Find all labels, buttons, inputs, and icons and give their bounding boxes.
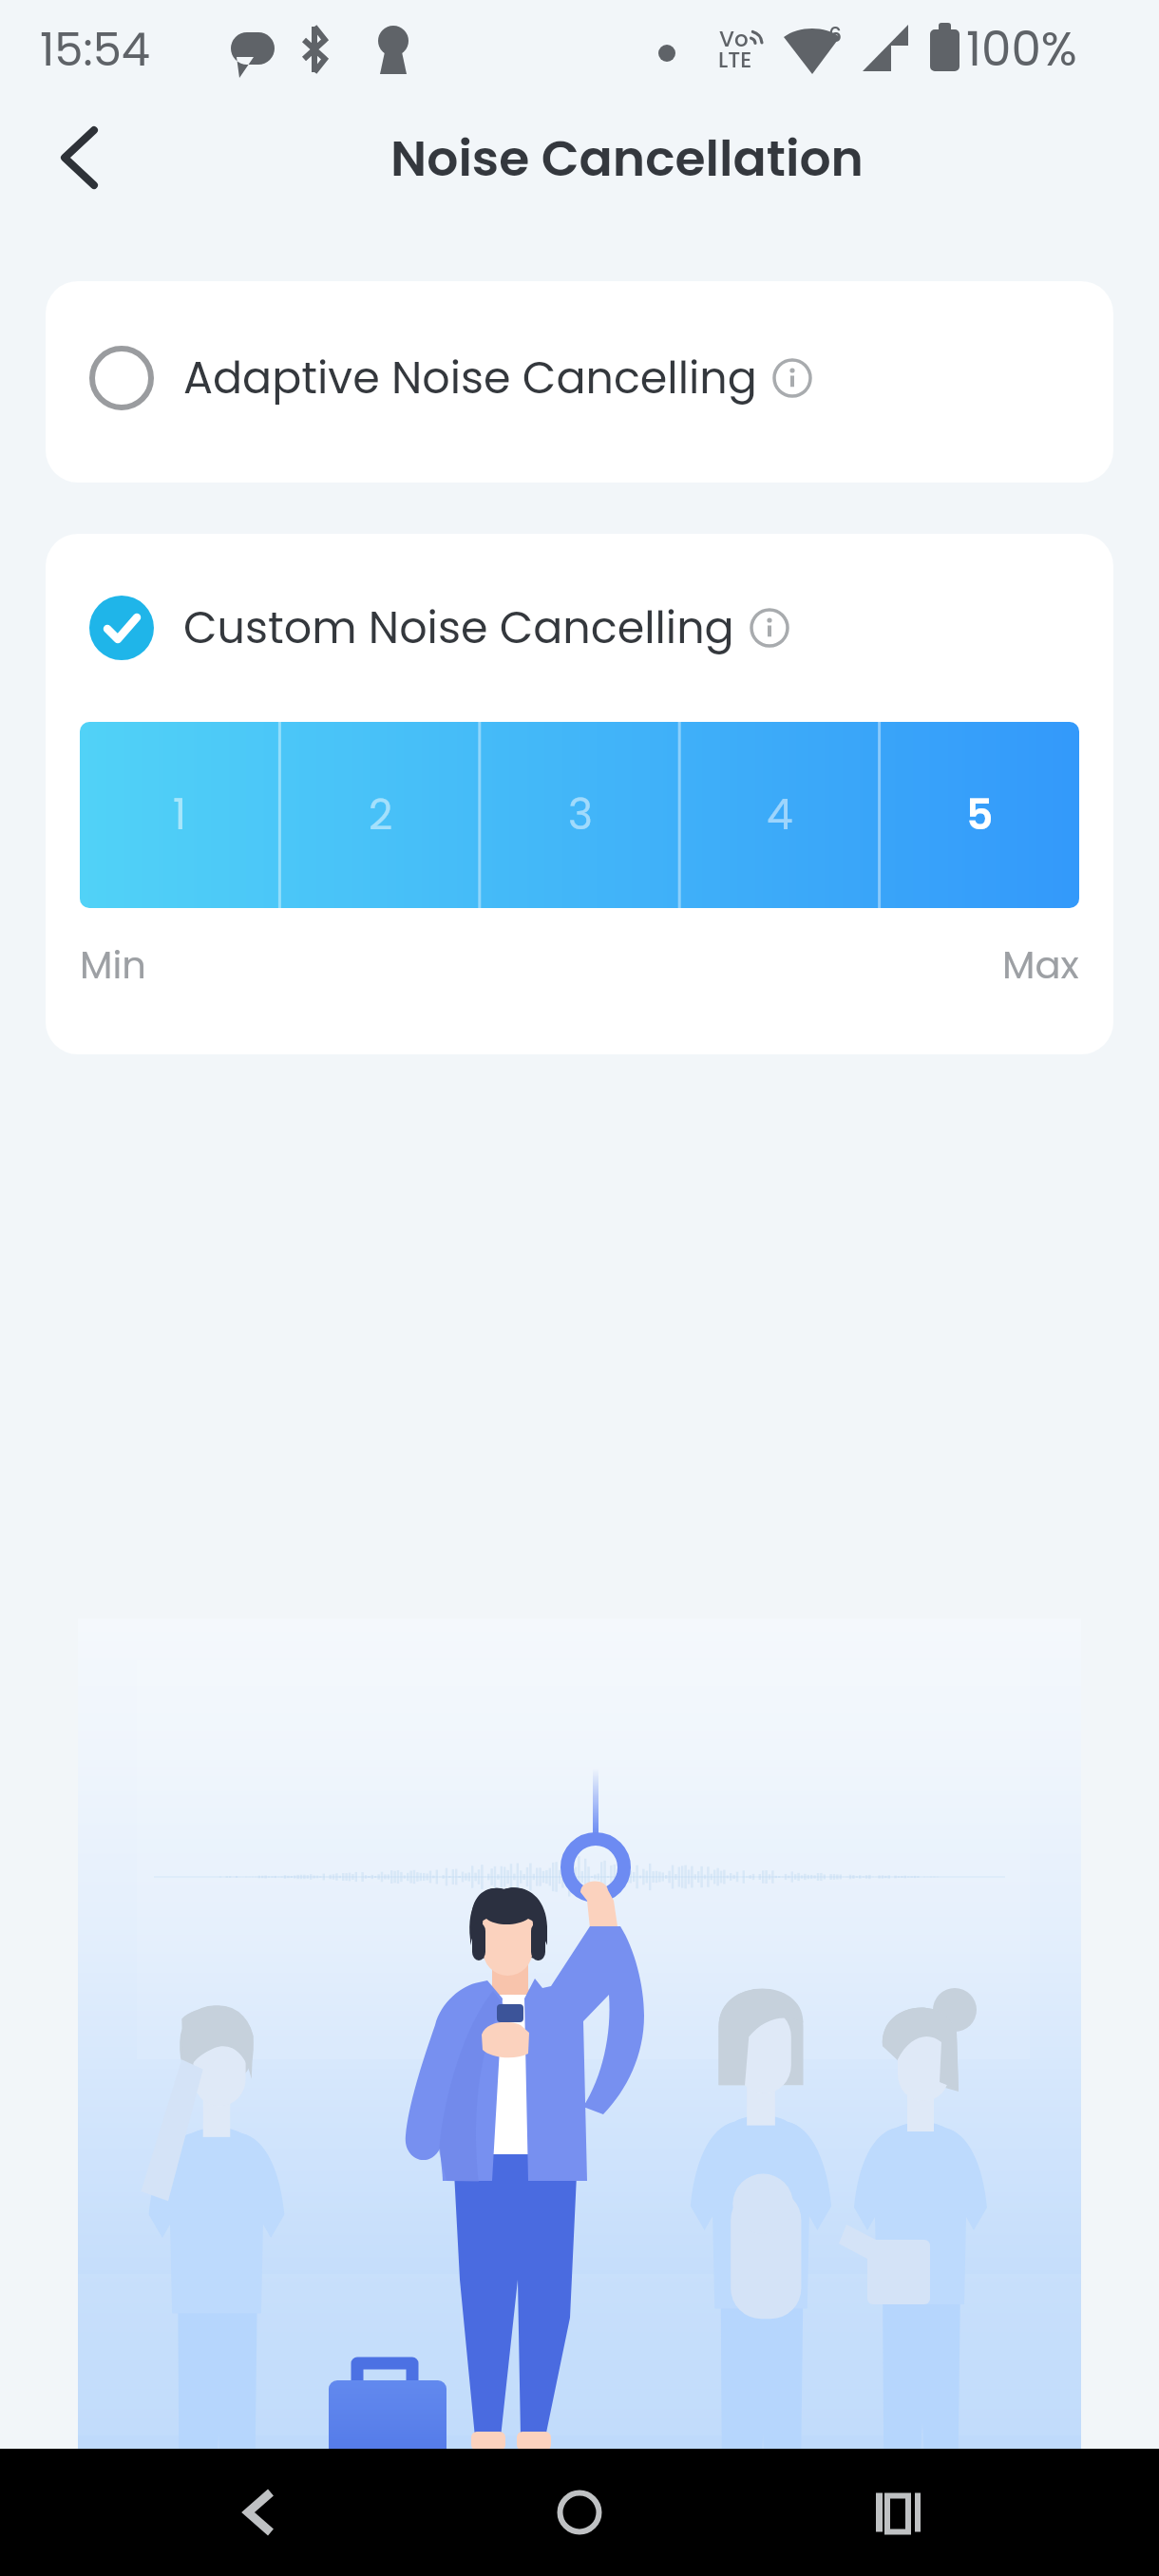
- button[interactable]: 1: [80, 722, 280, 908]
- staticText: Min: [80, 938, 146, 992]
- staticText: 15:54: [40, 18, 151, 82]
- button[interactable]: Info: [772, 358, 812, 398]
- staticText: 100%: [966, 16, 1077, 83]
- staticText: LTE: [718, 45, 752, 75]
- button[interactable]: Home: [534, 2467, 625, 2558]
- staticText: Noise Cancellation: [390, 123, 864, 193]
- staticText: 3: [568, 786, 593, 844]
- button[interactable]: 3: [481, 722, 680, 908]
- button[interactable]: Info: [750, 608, 789, 648]
- staticText: Custom Noise Cancelling: [183, 597, 734, 658]
- staticText: 2: [369, 786, 393, 844]
- button[interactable]: 5: [880, 722, 1079, 908]
- staticText: Vo: [719, 24, 749, 54]
- button[interactable]: Adaptive Noise Cancelling: [46, 281, 1113, 483]
- button[interactable]: 4: [680, 722, 880, 908]
- button[interactable]: Custom Noise Cancelling: [46, 580, 1113, 675]
- staticText: 1: [173, 786, 187, 844]
- button[interactable]: 2: [280, 722, 481, 908]
- staticText: Max: [1002, 938, 1079, 992]
- button[interactable]: Back: [214, 2467, 305, 2558]
- button[interactable]: Recents: [852, 2467, 943, 2558]
- staticText: 5: [966, 786, 994, 844]
- staticText: 4: [767, 786, 793, 844]
- staticText: Adaptive Noise Cancelling: [183, 348, 757, 408]
- button[interactable]: Back: [35, 113, 124, 202]
- staticText: 6: [828, 20, 843, 49]
